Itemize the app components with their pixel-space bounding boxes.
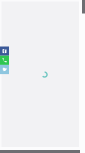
button[interactable]: Share on Facebook (0, 46, 9, 56)
button[interactable]: Share on Twitter (0, 65, 9, 74)
button[interactable]: Share on WhatsApp (0, 56, 9, 65)
